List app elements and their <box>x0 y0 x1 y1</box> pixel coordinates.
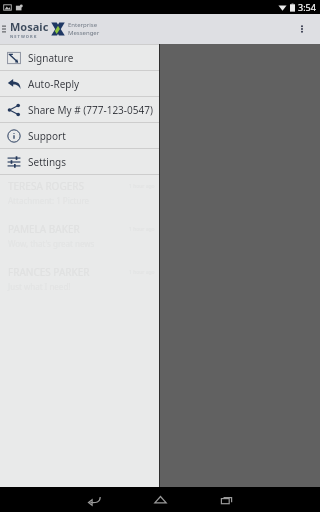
staticText: Thanks <box>8 66 35 77</box>
staticText: GLADYS HAMILTON <box>8 93 100 107</box>
staticText: Messenger <box>68 29 100 37</box>
staticText: Share My # (777-123-0547) <box>28 103 153 117</box>
button[interactable]: Home <box>127 487 193 512</box>
staticText: AUTO-REPLY <box>8 136 67 150</box>
staticText: FRANCES PARKER <box>8 265 90 279</box>
staticText: Settings <box>28 155 67 169</box>
staticText: I was hoping you'd been in touch <box>8 109 132 120</box>
staticText: 3:54 <box>298 1 316 13</box>
button[interactable]: Support <box>0 123 159 148</box>
staticText: Auto-Reply <box>28 77 80 91</box>
button[interactable]: Settings <box>0 149 159 174</box>
staticText: JANE PHILLIPS <box>8 50 76 64</box>
staticText: Enterprise <box>68 21 98 29</box>
staticText: PAMELA BAKER <box>8 222 80 236</box>
button[interactable]: Share My # (777-123-0547) <box>0 97 159 122</box>
staticText: Signature <box>28 51 74 65</box>
staticText: N E T W O R K <box>10 34 37 39</box>
staticText: TERESA ROGERS <box>8 179 84 193</box>
button[interactable]: More options <box>288 15 316 43</box>
staticText: Support <box>28 129 66 143</box>
button[interactable]: Signature <box>0 45 159 70</box>
button[interactable]: Back <box>61 487 127 512</box>
button[interactable]: Auto-Reply <box>0 71 159 96</box>
button[interactable]: Recent apps <box>193 487 259 512</box>
staticText: Yes I can. Pick those up on my way home. <box>8 152 159 163</box>
staticText: Mosaic <box>10 19 49 34</box>
